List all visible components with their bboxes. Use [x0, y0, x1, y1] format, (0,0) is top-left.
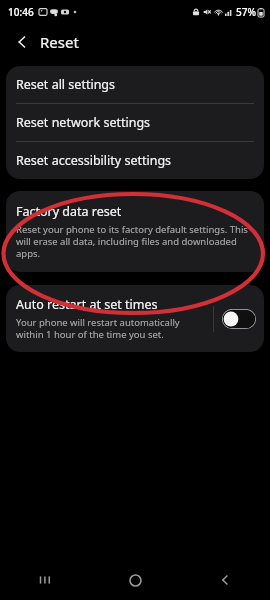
staticText: 57% — [236, 5, 256, 19]
staticText: Reset — [40, 32, 79, 52]
button[interactable]: Factory data reset — [6, 191, 264, 272]
staticText: Reset network settings — [16, 114, 151, 131]
staticText: Reset all settings — [16, 76, 116, 93]
button[interactable]: Back — [8, 28, 36, 56]
staticText: Reset accessibility settings — [16, 152, 172, 169]
staticText: Reset your phone to its factory default … — [16, 223, 252, 260]
button[interactable]: Back — [180, 560, 270, 600]
button[interactable]: Recent apps — [0, 560, 90, 600]
button[interactable]: Reset accessibility settings — [6, 142, 264, 179]
button[interactable]: Reset network settings — [6, 104, 264, 141]
button[interactable]: Auto restart toggle, off — [222, 309, 256, 329]
staticText: Your phone will restart automatically wi… — [16, 316, 207, 341]
button[interactable]: Home — [90, 560, 180, 600]
staticText: 10:46 — [8, 5, 34, 19]
staticText: Factory data reset — [16, 203, 122, 220]
staticText: Auto restart at set times — [16, 296, 158, 313]
button[interactable]: Reset all settings — [6, 66, 264, 103]
